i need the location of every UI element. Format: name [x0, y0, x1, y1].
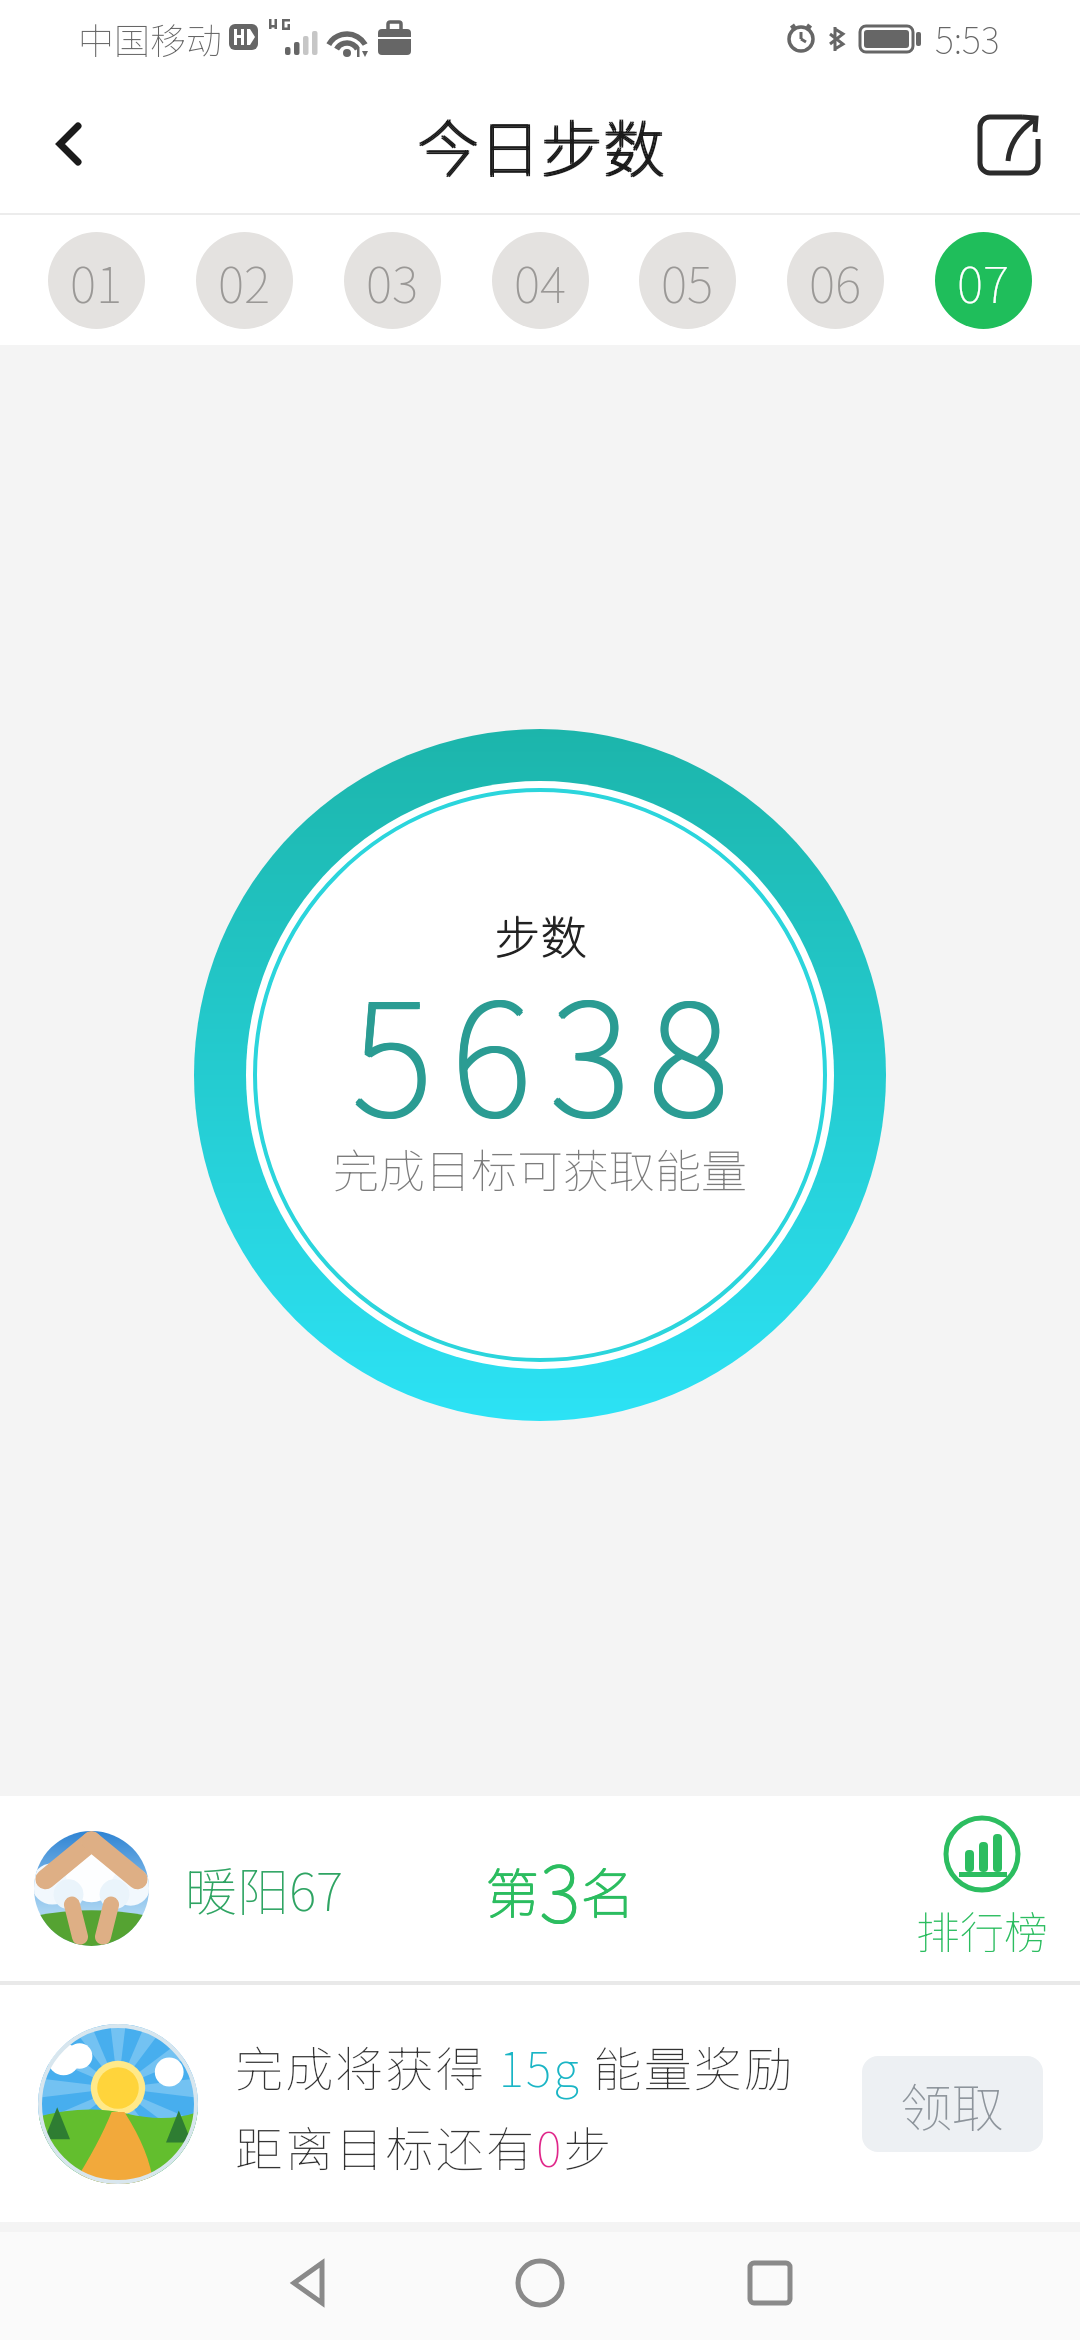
staticText: 02	[218, 245, 271, 317]
button[interactable]	[974, 109, 1044, 179]
staticText: 完成目标可获取能量	[333, 1135, 747, 1202]
staticText: 排行榜	[916, 1898, 1048, 1962]
staticText: 5638	[351, 937, 747, 1161]
staticText: 今日步数	[418, 101, 667, 191]
button[interactable]	[490, 2233, 590, 2333]
staticText: 04	[514, 245, 567, 317]
staticText: 名	[581, 1851, 635, 1929]
staticText: 3	[539, 1832, 580, 1945]
staticText: 距离目标还有0步	[235, 2111, 614, 2181]
button[interactable]: 领取	[862, 2056, 1043, 2152]
button[interactable]: 排行榜	[916, 1816, 1048, 1962]
staticText: 第	[485, 1851, 539, 1929]
staticText: 步数	[495, 901, 587, 968]
button[interactable]: 01	[48, 232, 145, 329]
staticText: 07	[957, 245, 1010, 317]
staticText: 完成将获得 15g 能量奖励	[235, 2031, 795, 2101]
staticText: 中国移动	[78, 12, 223, 64]
button[interactable]	[720, 2233, 820, 2333]
staticText: 步数	[495, 902, 587, 969]
button[interactable]	[260, 2233, 360, 2333]
staticText: 名	[580, 1851, 634, 1929]
button[interactable]: 05	[639, 232, 736, 329]
staticText: 步数	[494, 902, 586, 969]
button[interactable]	[40, 114, 100, 174]
staticText: 5638	[351, 935, 747, 1159]
button[interactable]: 03	[344, 232, 441, 329]
staticText: 今日步数	[418, 99, 667, 189]
staticText: 领取	[900, 2067, 1005, 2142]
staticText: 01	[70, 245, 123, 317]
staticText: 5638	[353, 937, 749, 1161]
staticText: 3	[540, 1832, 581, 1945]
staticText: 5638	[353, 935, 749, 1159]
staticText: 第	[486, 1850, 540, 1928]
staticText: 5:53	[935, 12, 1000, 64]
staticText: 今日步数	[416, 99, 665, 189]
staticText: 今日步数	[416, 101, 665, 191]
staticText: 名	[581, 1850, 635, 1928]
staticText: 03	[366, 245, 419, 317]
staticText: 第	[486, 1851, 540, 1929]
button[interactable]: 02	[196, 232, 293, 329]
staticText: 3	[540, 1833, 581, 1946]
staticText: 第	[485, 1850, 539, 1928]
button[interactable]: 06	[787, 232, 884, 329]
staticText: 3	[539, 1833, 580, 1946]
staticText: 步数	[494, 901, 586, 968]
button[interactable]: 04	[492, 232, 589, 329]
staticText: 暖阳67	[185, 1851, 344, 1926]
button[interactable]: 07	[935, 232, 1032, 329]
button[interactable]: 暖阳67	[0, 1796, 1080, 1981]
staticText: 名	[580, 1850, 634, 1928]
staticText: 05	[661, 245, 714, 317]
staticText: 06	[809, 245, 862, 317]
